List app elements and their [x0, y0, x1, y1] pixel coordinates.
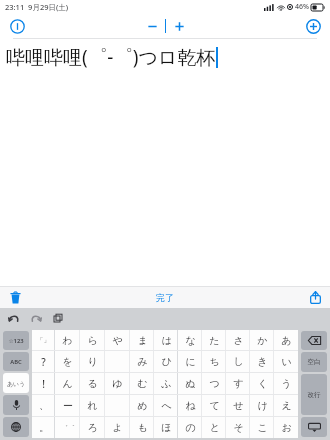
button[interactable]: ね	[178, 395, 202, 416]
button[interactable]: は	[154, 330, 178, 350]
staticText: つ	[209, 377, 220, 390]
staticText: や	[112, 334, 123, 347]
staticText: !	[42, 377, 45, 391]
button[interactable]: ふ	[154, 373, 178, 394]
staticText: よ	[112, 421, 123, 434]
button[interactable]: お	[274, 417, 298, 438]
button[interactable]: へ	[154, 395, 178, 416]
button[interactable]: 。	[32, 417, 55, 438]
button[interactable]: 、	[32, 395, 55, 416]
button[interactable]: Delete	[5, 287, 25, 307]
button[interactable]: こ	[250, 417, 274, 438]
staticText: お	[281, 421, 292, 434]
button[interactable]: Share	[305, 287, 325, 307]
button[interactable]: に	[178, 351, 202, 372]
button[interactable]: ゆ	[105, 373, 130, 394]
button[interactable]: と	[202, 417, 226, 438]
button[interactable]: ☆123	[3, 331, 29, 350]
button[interactable]: あ	[274, 330, 298, 350]
button[interactable]: 完了	[156, 292, 174, 303]
button[interactable]: ま	[130, 330, 154, 350]
button[interactable]: ち	[202, 351, 226, 372]
staticText: た	[209, 334, 220, 347]
button[interactable]: Hide keyboard	[301, 417, 327, 437]
staticText: け	[257, 399, 268, 412]
button[interactable]: ぬ	[178, 373, 202, 394]
staticText: る	[87, 377, 98, 390]
staticText: の	[185, 421, 196, 434]
staticText: ー	[63, 399, 73, 412]
button[interactable]: む	[130, 373, 154, 394]
staticText: め	[137, 399, 148, 412]
button[interactable]: !	[32, 373, 55, 394]
button[interactable]: ー	[55, 395, 80, 416]
button[interactable]: Paste	[48, 308, 68, 328]
button[interactable]: を	[55, 351, 80, 372]
button[interactable]: Zoom out	[139, 19, 165, 33]
staticText: ね	[185, 399, 196, 412]
staticText: ら	[87, 334, 98, 347]
button[interactable]: よ	[105, 417, 130, 438]
button[interactable]	[105, 351, 130, 372]
button[interactable]: 空白	[301, 352, 327, 372]
staticText: し	[233, 355, 244, 368]
button[interactable]: す	[226, 373, 250, 394]
button[interactable]: Dictation	[3, 395, 29, 415]
button[interactable]: つ	[202, 373, 226, 394]
button[interactable]: い	[274, 351, 298, 372]
staticText: は	[161, 334, 172, 347]
staticText: あ	[281, 334, 292, 347]
button[interactable]: そ	[226, 417, 250, 438]
button[interactable]: り	[80, 351, 105, 372]
button[interactable]: ん	[55, 373, 80, 394]
button[interactable]: る	[80, 373, 105, 394]
button[interactable]: ほ	[154, 417, 178, 438]
button[interactable]: 改行	[301, 374, 327, 415]
button[interactable]: ?	[32, 351, 55, 372]
button[interactable]: れ	[80, 395, 105, 416]
button[interactable]: Add	[302, 15, 324, 37]
button[interactable]: 「」	[32, 330, 55, 350]
button[interactable]	[105, 395, 130, 416]
button[interactable]: あいう	[3, 373, 29, 393]
button[interactable]: な	[178, 330, 202, 350]
button[interactable]: わ	[55, 330, 80, 350]
button[interactable]: ゛゜	[55, 417, 80, 438]
button[interactable]: き	[250, 351, 274, 372]
staticText: ゆ	[112, 377, 123, 390]
staticText: 23:11 9月29日(土)	[5, 2, 69, 12]
button[interactable]: ら	[80, 330, 105, 350]
button[interactable]: さ	[226, 330, 250, 350]
button[interactable]: し	[226, 351, 250, 372]
button[interactable]: く	[250, 373, 274, 394]
button[interactable]: ABC	[3, 352, 29, 371]
button[interactable]: か	[250, 330, 274, 350]
staticText: す	[233, 377, 244, 390]
button[interactable]: て	[202, 395, 226, 416]
button[interactable]: せ	[226, 395, 250, 416]
button[interactable]: ひ	[154, 351, 178, 372]
staticText: り	[87, 355, 98, 368]
button[interactable]: Switch keyboard	[3, 417, 29, 437]
staticText: 哔哩哔哩(゜-゜)つロ乾杯	[6, 44, 216, 70]
button[interactable]: Info	[6, 15, 28, 37]
staticText: ふ	[161, 377, 172, 390]
button[interactable]: た	[202, 330, 226, 350]
staticText: き	[257, 355, 268, 368]
staticText: 空白	[307, 358, 321, 366]
button[interactable]: も	[130, 417, 154, 438]
button[interactable]: え	[274, 395, 298, 416]
button[interactable]: Zoom in	[166, 19, 192, 33]
button[interactable]: け	[250, 395, 274, 416]
button[interactable]: Undo	[4, 308, 24, 328]
button[interactable]: Delete	[301, 331, 327, 350]
button[interactable]: や	[105, 330, 130, 350]
button[interactable]: う	[274, 373, 298, 394]
button[interactable]: み	[130, 351, 154, 372]
button[interactable]: ろ	[80, 417, 105, 438]
button[interactable]: め	[130, 395, 154, 416]
staticText: ゛゜	[61, 424, 75, 432]
button[interactable]: Redo	[26, 308, 46, 328]
staticText: 改行	[307, 391, 321, 399]
button[interactable]: の	[178, 417, 202, 438]
